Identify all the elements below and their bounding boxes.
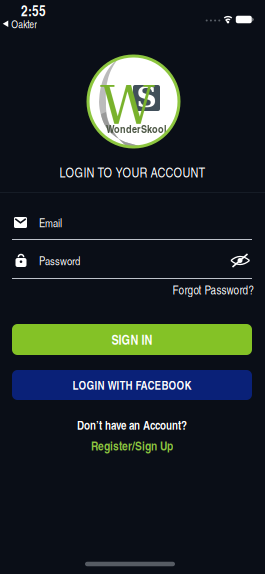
staticText: Email bbox=[39, 214, 62, 230]
staticText: WonderSkool bbox=[106, 121, 167, 136]
button[interactable]: Password bbox=[0, 233, 265, 281]
staticText: LOGIN TO YOUR ACCOUNT bbox=[59, 163, 205, 181]
staticText: Forgot Password? bbox=[172, 281, 254, 298]
staticText: Don’t have an Account? bbox=[77, 416, 187, 433]
staticText: Password bbox=[39, 252, 80, 268]
button[interactable]: Register/Sign Up bbox=[85, 433, 179, 458]
staticText: Register/Sign Up bbox=[91, 437, 173, 454]
button[interactable]: SIGN IN bbox=[12, 324, 252, 355]
staticText: Oakter bbox=[11, 17, 37, 31]
button[interactable]: Show password bbox=[225, 248, 255, 272]
button[interactable]: LOGIN WITH FACEBOOK bbox=[12, 370, 252, 400]
staticText: LOGIN WITH FACEBOOK bbox=[72, 376, 191, 393]
button[interactable]: Forgot Password? bbox=[168, 278, 258, 301]
staticText: SIGN IN bbox=[111, 330, 152, 349]
button[interactable]: Email bbox=[0, 195, 265, 243]
staticText: W bbox=[100, 74, 155, 137]
staticText: 2:55 bbox=[21, 0, 46, 21]
staticText: S bbox=[136, 81, 156, 114]
button[interactable]: Back to Oakter bbox=[3, 17, 37, 31]
